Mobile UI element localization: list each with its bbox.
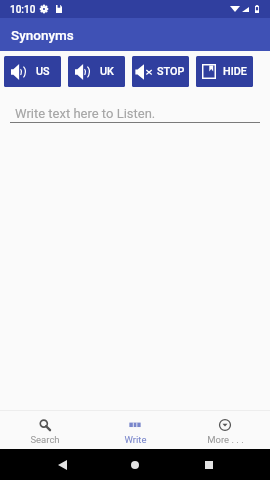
button[interactable]: UK — [68, 56, 125, 87]
staticText: Write text here to Listen. — [15, 106, 156, 121]
staticText: STOP — [157, 65, 185, 78]
staticText: UK — [100, 65, 114, 78]
button[interactable]: Home — [123, 453, 147, 477]
staticText: More . . . — [207, 434, 244, 445]
button[interactable]: More . . . — [180, 411, 270, 449]
button[interactable]: STOP — [132, 56, 189, 87]
staticText: 10:10 — [10, 4, 36, 16]
button[interactable]: HIDE — [196, 56, 253, 87]
button[interactable]: Write — [90, 411, 180, 449]
staticText: HIDE — [223, 65, 247, 78]
button[interactable]: Back — [50, 453, 74, 477]
button[interactable]: US — [4, 56, 61, 87]
staticText: Write — [124, 434, 147, 445]
button[interactable]: Search — [0, 411, 90, 449]
button[interactable]: Recent apps — [197, 453, 221, 477]
staticText: US — [36, 65, 50, 78]
staticText: Search — [30, 434, 60, 445]
staticText: Synonyms — [11, 27, 74, 43]
